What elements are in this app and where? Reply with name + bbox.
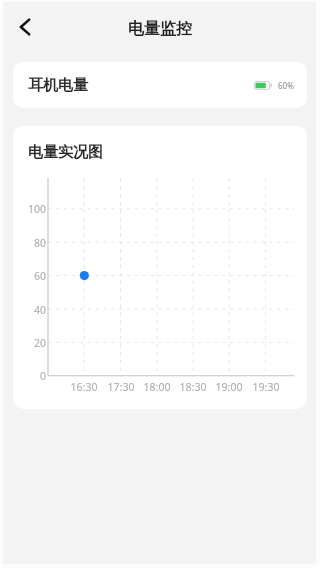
- staticText: 18:30: [173, 380, 213, 394]
- staticText: 60%: [278, 80, 294, 91]
- button[interactable]: Back: [9, 11, 41, 43]
- staticText: 0: [16, 369, 46, 383]
- staticText: 16:30: [64, 380, 104, 394]
- staticText: 80: [16, 236, 46, 250]
- staticText: 耳机电量: [28, 76, 88, 95]
- staticText: 20: [16, 336, 46, 350]
- staticText: 19:00: [209, 380, 249, 394]
- staticText: 17:30: [101, 380, 141, 394]
- staticText: 电量实况图: [28, 143, 103, 162]
- staticText: 电量监控: [128, 19, 192, 39]
- button[interactable]: 耳机电量: [13, 62, 307, 108]
- staticText: 100: [16, 202, 46, 216]
- staticText: 60: [16, 269, 46, 283]
- staticText: 19:30: [246, 380, 286, 394]
- staticText: 40: [16, 303, 46, 317]
- staticText: 18:00: [137, 380, 177, 394]
